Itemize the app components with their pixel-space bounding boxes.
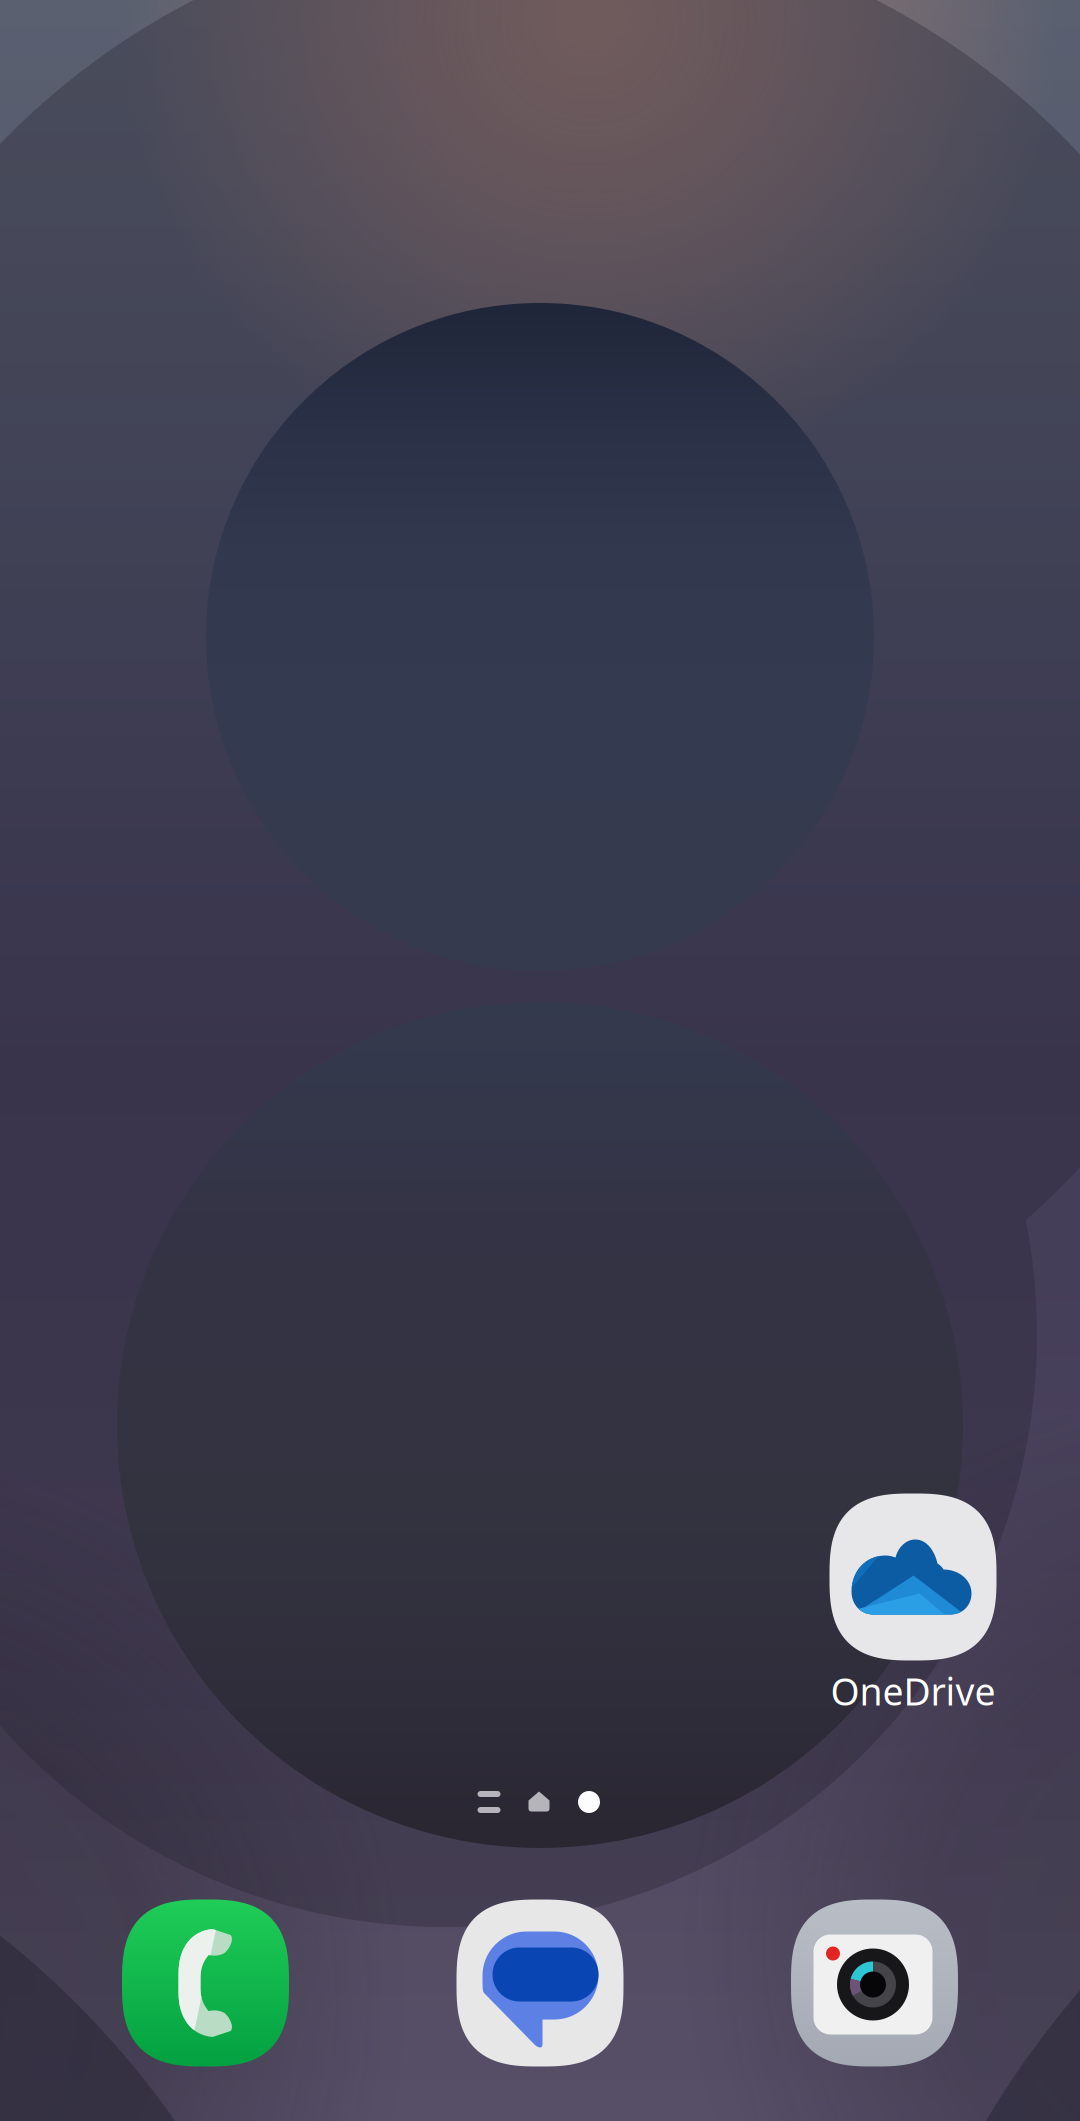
button[interactable]: Current page [567, 1782, 611, 1822]
button[interactable]: OneDrive [788, 1494, 1038, 1724]
button[interactable]: Phone [122, 1899, 289, 2066]
button[interactable]: Home screen [517, 1782, 561, 1822]
button[interactable]: Camera [791, 1899, 958, 2066]
button[interactable]: Apps list [467, 1782, 511, 1822]
staticText: OneDrive [830, 1666, 995, 1716]
button[interactable]: Messages [456, 1899, 623, 2066]
